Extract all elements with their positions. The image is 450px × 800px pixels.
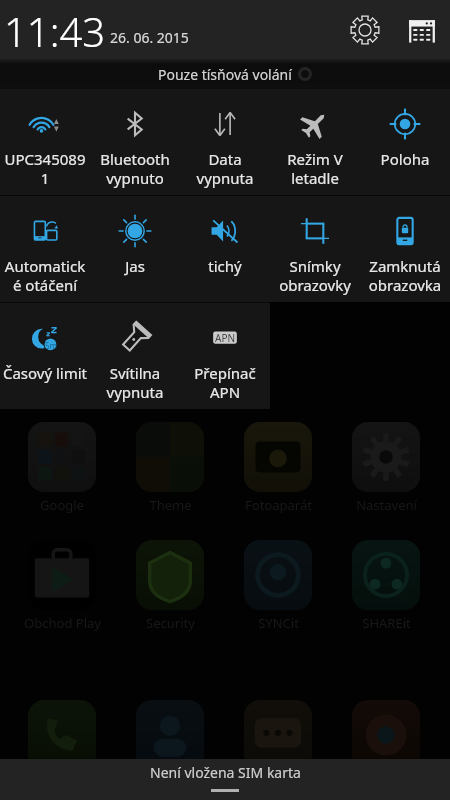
button[interactable] <box>136 540 204 610</box>
staticText: Režim V letadle <box>270 149 360 188</box>
staticText: Theme <box>149 496 192 514</box>
button[interactable]: Zamknutá obrazovka <box>360 196 450 302</box>
button[interactable]: Edit quick settings <box>402 12 442 48</box>
staticText: APN <box>215 331 236 345</box>
button[interactable] <box>244 540 312 610</box>
button[interactable]: APN <box>180 303 270 409</box>
staticText: Přepínač APN <box>180 363 270 402</box>
staticText: Pouze tísňová volání <box>158 65 292 84</box>
button[interactable] <box>136 422 204 492</box>
staticText: Google <box>40 496 84 514</box>
staticText: Nastavení <box>356 496 417 514</box>
staticText: Security <box>146 614 195 632</box>
staticText: UPC345089 1 <box>0 149 90 188</box>
staticText: 26. 06. 2015 <box>110 28 189 47</box>
staticText: SHAREit <box>362 614 411 632</box>
button[interactable] <box>244 700 312 770</box>
button[interactable]: 5m <box>0 303 90 409</box>
button[interactable]: tichý <box>180 196 270 302</box>
staticText: Zamknutá obrazovka <box>360 256 450 295</box>
button[interactable] <box>28 700 96 770</box>
staticText: tichý <box>180 256 270 276</box>
button[interactable] <box>28 540 96 610</box>
staticText: Časový limit <box>0 363 90 383</box>
staticText: Jas <box>90 256 180 276</box>
staticText: Svítilna vypnuta <box>90 363 180 402</box>
button[interactable]: Svítilna vypnuta <box>90 303 180 409</box>
staticText: Automatick é otáčení <box>0 256 90 295</box>
staticText: Poloha <box>360 149 450 169</box>
staticText: Obchod Play <box>24 614 101 632</box>
button[interactable] <box>352 540 420 610</box>
staticText: Data vypnuta <box>180 149 270 188</box>
button[interactable] <box>352 700 420 770</box>
button[interactable]: Automatick é otáčení <box>0 196 90 302</box>
staticText: SYNCit <box>258 614 299 632</box>
staticText: Fotoaparát <box>245 496 312 514</box>
staticText: 5m <box>45 340 58 351</box>
button[interactable] <box>352 422 420 492</box>
staticText: Není vložena SIM karta <box>150 763 301 782</box>
button[interactable] <box>136 700 204 770</box>
button[interactable] <box>244 422 312 492</box>
button[interactable]: Bluetooth vypnuto <box>90 89 180 195</box>
button[interactable]: UPC345089 1 <box>0 89 90 195</box>
staticText: Bluetooth vypnuto <box>90 149 180 188</box>
button[interactable]: Jas <box>90 196 180 302</box>
button[interactable]: Snímky obrazovky <box>270 196 360 302</box>
button[interactable]: Není vložena SIM karta <box>0 759 450 785</box>
staticText: 11:43 <box>4 4 106 58</box>
button[interactable]: Data vypnuta <box>180 89 270 195</box>
button[interactable] <box>28 422 96 492</box>
staticText: Snímky obrazovky <box>270 256 360 295</box>
button[interactable]: Settings <box>345 12 385 48</box>
button[interactable]: Režim V letadle <box>270 89 360 195</box>
button[interactable]: Poloha <box>360 89 450 195</box>
